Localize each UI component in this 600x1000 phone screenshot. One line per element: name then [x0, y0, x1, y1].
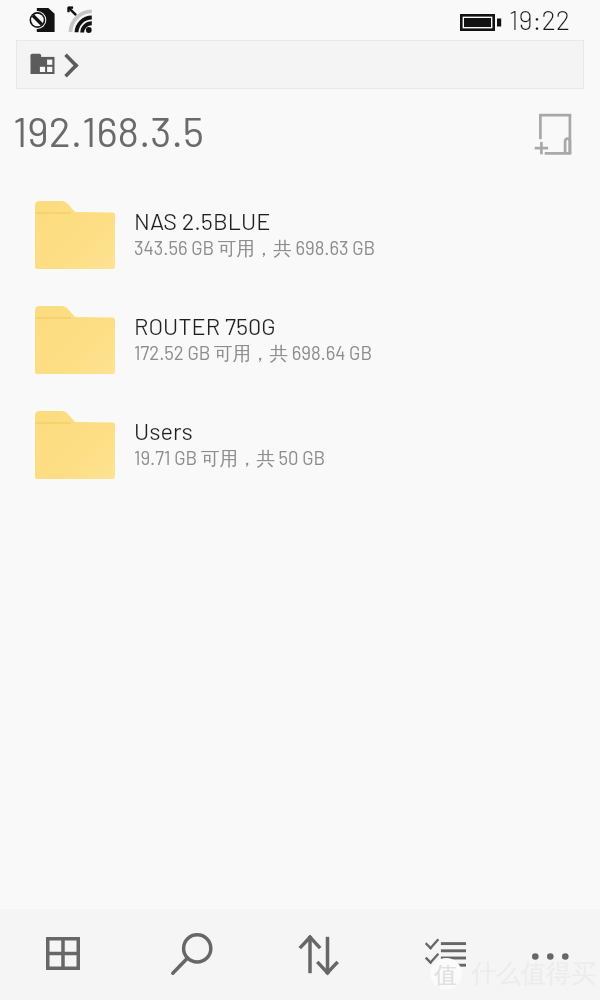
staticText: ROUTER 750G	[134, 311, 276, 339]
button[interactable]: Search	[149, 913, 234, 997]
button[interactable]: Transfers	[279, 913, 359, 997]
staticText: Users	[134, 416, 193, 444]
staticText: 192.168.3.5	[13, 106, 204, 155]
staticText: 什么值得买	[471, 958, 596, 989]
staticText: 19.71 GB 可用，共 50 GB	[134, 446, 326, 470]
button[interactable]: Users	[0, 393, 600, 497]
button[interactable]: ROUTER 750G	[0, 288, 600, 392]
button[interactable]: More options	[510, 931, 591, 982]
button[interactable]: Select items	[404, 918, 489, 990]
staticText: NAS 2.5BLUE	[134, 206, 271, 234]
staticText: 172.52 GB 可用，共 698.64 GB	[134, 341, 373, 365]
button[interactable]: Grid view	[24, 915, 102, 992]
button[interactable]: New item	[524, 104, 580, 160]
button[interactable]: NAS 2.5BLUE	[0, 183, 600, 287]
button[interactable]	[16, 40, 584, 89]
staticText: 343.56 GB 可用，共 698.63 GB	[134, 236, 376, 260]
staticText: 值	[434, 961, 457, 990]
staticText: 19:22	[509, 3, 571, 35]
